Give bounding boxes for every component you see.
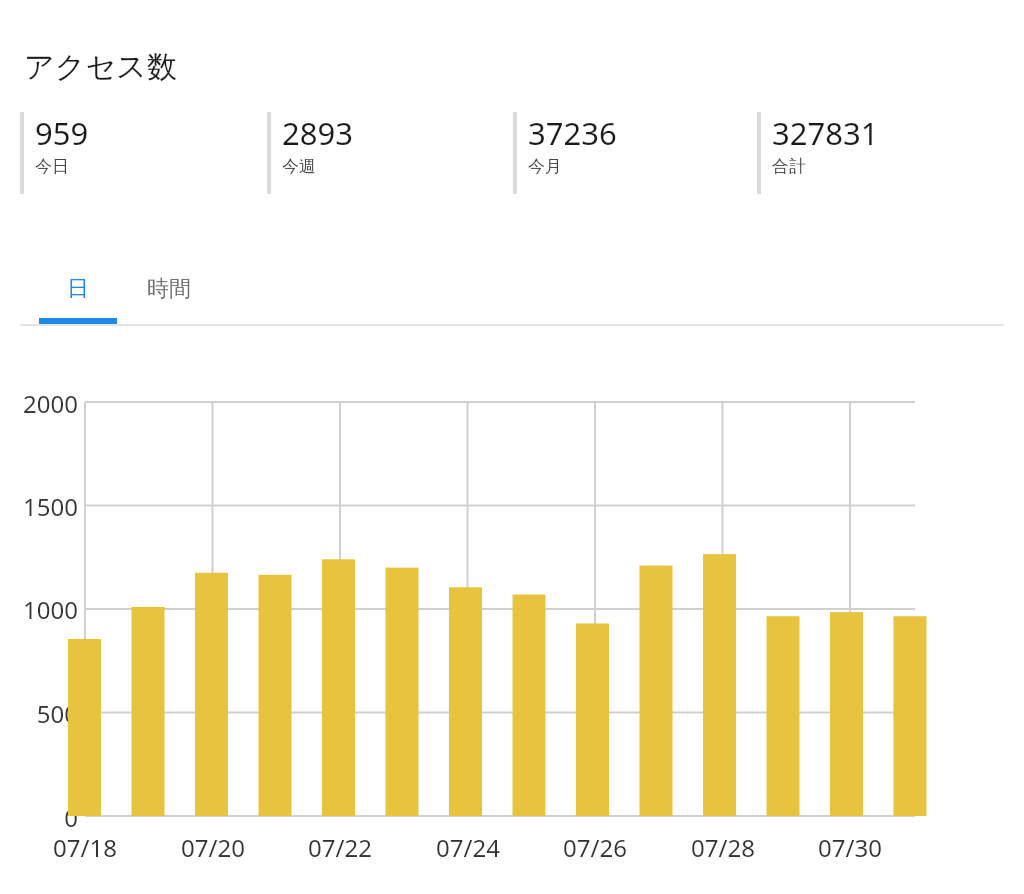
- staticText: 2000: [23, 387, 78, 420]
- staticText: 07/26: [563, 831, 627, 864]
- button[interactable]: 2893: [267, 112, 507, 194]
- button[interactable]: 37236: [513, 112, 753, 194]
- staticText: 07/28: [691, 831, 755, 864]
- staticText: 合計: [772, 156, 806, 177]
- button[interactable]: 日: [39, 252, 117, 325]
- staticText: 0: [64, 801, 78, 834]
- staticText: 07/30: [818, 831, 882, 864]
- staticText: 2893: [282, 112, 353, 154]
- staticText: 07/18: [53, 831, 117, 864]
- button[interactable]: 327831: [757, 112, 997, 194]
- button[interactable]: 時間: [125, 252, 213, 325]
- staticText: 07/22: [308, 831, 372, 864]
- staticText: 327831: [772, 112, 879, 154]
- staticText: 07/20: [181, 831, 245, 864]
- staticText: 500: [36, 697, 78, 730]
- staticText: 今月: [528, 156, 562, 177]
- button[interactable]: 959: [20, 112, 260, 194]
- staticText: 日: [67, 275, 89, 303]
- staticText: 時間: [147, 275, 191, 303]
- staticText: 959: [35, 112, 89, 154]
- staticText: 37236: [528, 112, 617, 154]
- staticText: 1500: [23, 490, 78, 523]
- staticText: アクセス数: [24, 48, 177, 86]
- staticText: 07/24: [436, 831, 500, 864]
- staticText: 1000: [23, 593, 78, 626]
- staticText: 今日: [35, 156, 69, 177]
- staticText: 今週: [282, 156, 316, 177]
